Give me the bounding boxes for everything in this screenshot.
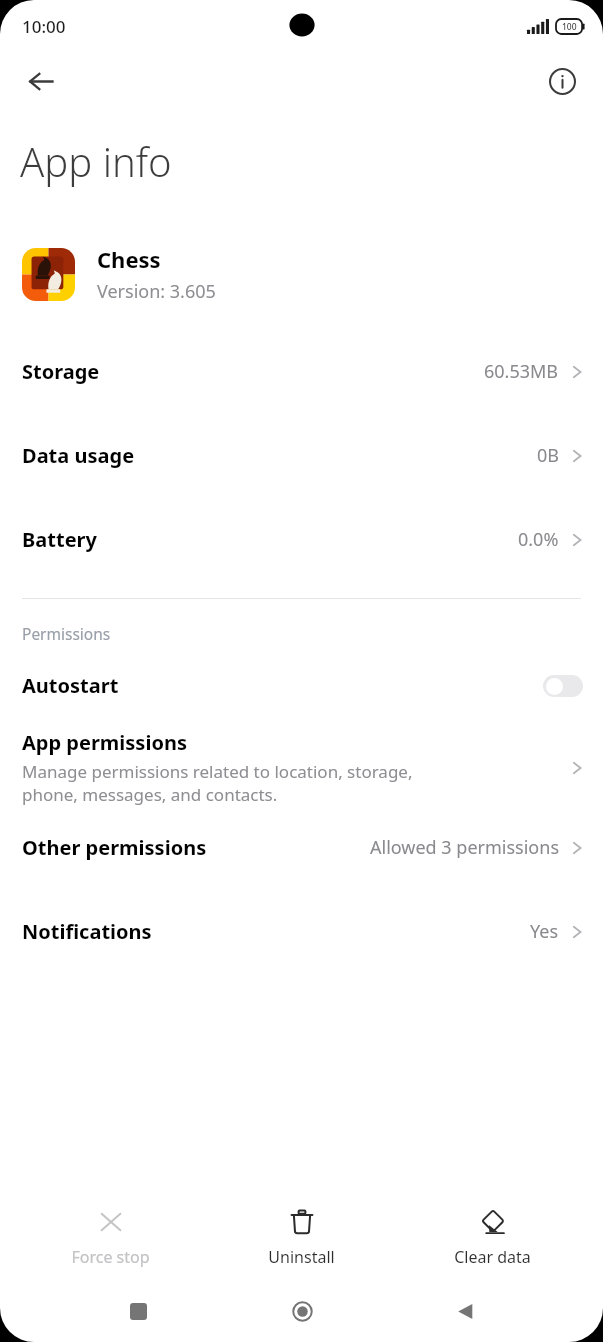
staticText: Notifications xyxy=(22,918,152,945)
staticText: Uninstall xyxy=(268,1246,335,1268)
staticText: Permissions xyxy=(22,623,111,644)
staticText: Other permissions xyxy=(22,834,207,861)
staticText: Manage permissions related to location, … xyxy=(22,760,413,806)
button[interactable]: Clear data xyxy=(440,1201,545,1274)
button[interactable]: Autostart xyxy=(0,666,603,705)
button[interactable]: Recent apps xyxy=(113,1288,163,1334)
button[interactable]: Home xyxy=(277,1288,327,1334)
button[interactable]: App permissions xyxy=(0,723,603,812)
staticText: 0.0% xyxy=(518,527,559,552)
button[interactable]: Autostart toggle, off xyxy=(543,675,583,697)
staticText: Chess xyxy=(97,244,161,274)
staticText: Storage xyxy=(22,358,100,385)
staticText: 60.53MB xyxy=(484,359,559,384)
button[interactable]: Notifications xyxy=(0,912,603,951)
button[interactable]: Storage xyxy=(0,352,603,391)
button[interactable]: Uninstall xyxy=(249,1201,354,1274)
button[interactable]: Back xyxy=(440,1288,490,1334)
staticText: Battery xyxy=(22,526,97,553)
staticText: Autostart xyxy=(22,672,119,699)
button[interactable]: Back xyxy=(14,54,68,108)
button[interactable]: App details info xyxy=(535,54,589,108)
staticText: Force stop xyxy=(71,1246,150,1268)
button[interactable]: Data usage xyxy=(0,436,603,475)
staticText: 10:00 xyxy=(22,15,66,38)
staticText: Yes xyxy=(530,919,559,944)
staticText: Version: 3.605 xyxy=(97,279,216,304)
button[interactable]: Force stop xyxy=(58,1201,163,1274)
button[interactable]: Battery xyxy=(0,520,603,559)
staticText: Allowed 3 permissions xyxy=(370,835,559,860)
staticText: App info xyxy=(20,134,172,188)
staticText: 0B xyxy=(537,443,559,468)
button[interactable]: Other permissions xyxy=(0,828,603,867)
staticText: Data usage xyxy=(22,442,135,469)
staticText: 100 xyxy=(562,21,577,33)
staticText: App permissions xyxy=(22,729,187,756)
staticText: Clear data xyxy=(454,1246,531,1268)
